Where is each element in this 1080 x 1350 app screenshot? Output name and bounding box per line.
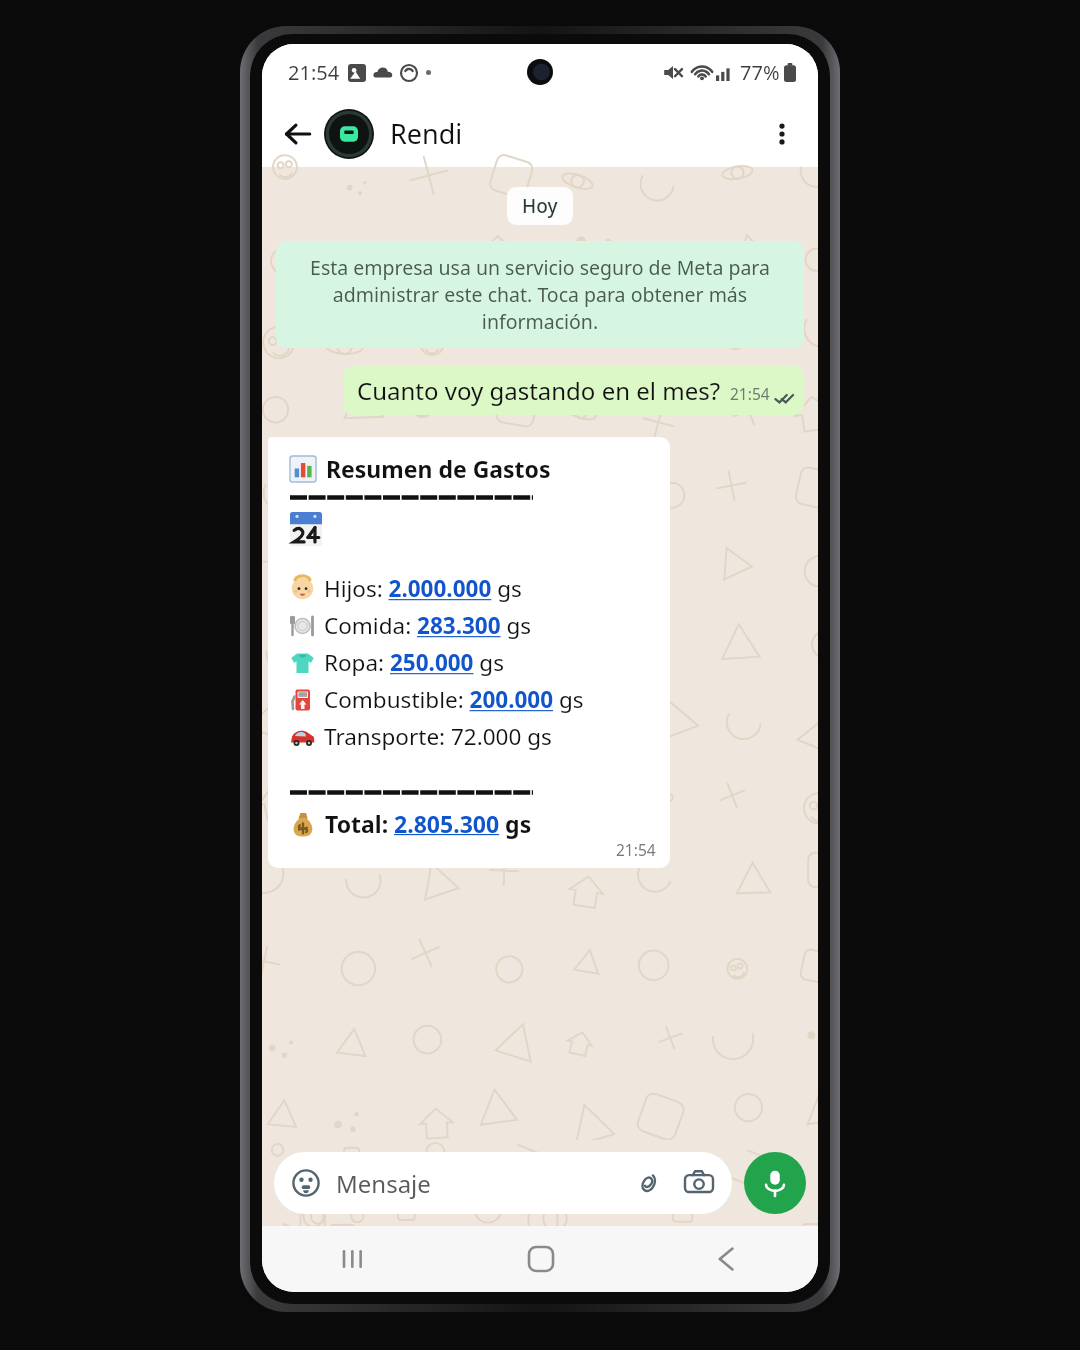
button[interactable]: Camera: [682, 1166, 716, 1200]
button[interactable]: Esta empresa usa un servicio seguro de M…: [276, 241, 804, 348]
button[interactable]: Home: [448, 1226, 633, 1292]
staticText: Total: 2.805.300 gs: [325, 808, 532, 839]
staticText: Mensaje: [336, 1167, 431, 1200]
button[interactable]: More options: [760, 112, 804, 156]
staticText: Combustible: 200.000 gs: [324, 684, 584, 715]
button[interactable]: Back: [633, 1226, 818, 1292]
button[interactable]: Recents: [262, 1226, 448, 1292]
button[interactable]: Back: [276, 112, 320, 156]
staticText: 21:54: [730, 383, 770, 404]
staticText: Hoy: [522, 193, 558, 219]
staticText: Rendi: [390, 115, 463, 152]
staticText: 21:54: [616, 839, 656, 860]
button[interactable]: Emoji: [274, 1152, 732, 1214]
button[interactable]: Rendi: [324, 100, 760, 167]
staticText: 21:54: [288, 59, 340, 86]
staticText: Esta empresa usa un servicio seguro de M…: [290, 254, 790, 335]
button[interactable]: Emoji: [290, 1167, 322, 1199]
staticText: Cuanto voy gastando en el mes?: [357, 374, 721, 407]
staticText: Comida: 283.300 gs: [324, 610, 532, 641]
button[interactable]: Voice message: [744, 1152, 806, 1214]
button[interactable]: Resumen de Gastos: [268, 437, 670, 868]
button[interactable]: Cuanto voy gastando en el mes?: [343, 366, 804, 415]
staticText: 77%: [740, 59, 780, 86]
staticText: Ropa: 250.000 gs: [324, 647, 504, 678]
staticText: Resumen de Gastos: [326, 453, 551, 484]
staticText: Hijos: 2.000.000 gs: [324, 573, 522, 604]
button[interactable]: Attach: [630, 1166, 664, 1200]
staticText: Transporte: 72.000 gs: [324, 721, 552, 752]
button[interactable]: Hoy: [507, 187, 573, 225]
